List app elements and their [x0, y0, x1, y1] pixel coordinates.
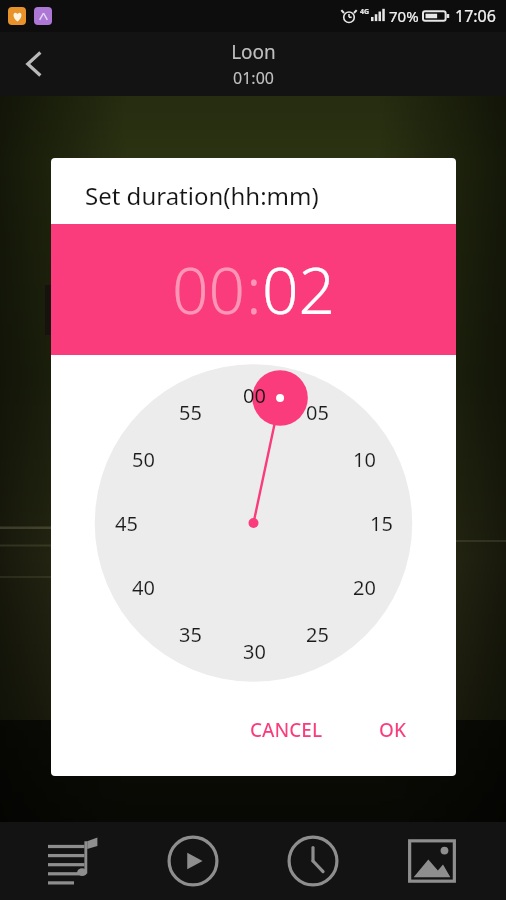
button[interactable]: 10 — [343, 445, 385, 473]
button[interactable]: 55 — [169, 398, 211, 426]
staticText: 35 — [179, 621, 202, 648]
button[interactable]: OK — [363, 711, 422, 749]
button[interactable]: 30 — [233, 637, 275, 665]
button[interactable]: Gallery — [386, 822, 478, 900]
button[interactable]: 00 — [172, 246, 246, 333]
staticText: OK — [379, 717, 406, 743]
button[interactable]: 35 — [169, 620, 211, 648]
staticText: 70% — [389, 6, 419, 26]
button[interactable]: CANCEL — [234, 711, 339, 749]
button[interactable]: 05 — [296, 398, 338, 426]
staticText: 50 — [132, 446, 155, 473]
staticText: CANCEL — [250, 717, 323, 743]
staticText: 25 — [306, 621, 329, 648]
staticText: 45 — [115, 510, 138, 537]
button[interactable]: 45 — [105, 509, 147, 537]
staticText: 20 — [353, 574, 376, 601]
button[interactable]: Play — [147, 822, 239, 900]
button[interactable]: Playlist — [28, 822, 120, 900]
staticText: 01:00 — [233, 67, 274, 89]
button[interactable]: 02 — [262, 246, 336, 333]
staticText: 10 — [353, 446, 376, 473]
staticText: 15 — [370, 510, 393, 537]
staticText: 17:06 — [455, 5, 496, 27]
button[interactable]: Back — [10, 40, 58, 88]
staticText: 05 — [306, 399, 329, 426]
staticText: 4G — [360, 7, 370, 17]
button[interactable]: 15 — [360, 509, 402, 537]
button[interactable]: 20 — [343, 573, 385, 601]
staticText: 40 — [132, 574, 155, 601]
staticText: 55 — [179, 399, 202, 426]
button[interactable]: 00 — [233, 381, 275, 409]
button[interactable]: 50 — [122, 445, 164, 473]
staticText: Set duration(hh:mm) — [85, 179, 319, 212]
staticText: 00 — [243, 382, 266, 409]
staticText: : — [246, 246, 262, 333]
staticText: 30 — [243, 638, 266, 665]
staticText: Loon — [231, 39, 276, 65]
button[interactable]: Timer — [267, 822, 359, 900]
button[interactable]: 25 — [296, 620, 338, 648]
button[interactable]: 40 — [122, 573, 164, 601]
